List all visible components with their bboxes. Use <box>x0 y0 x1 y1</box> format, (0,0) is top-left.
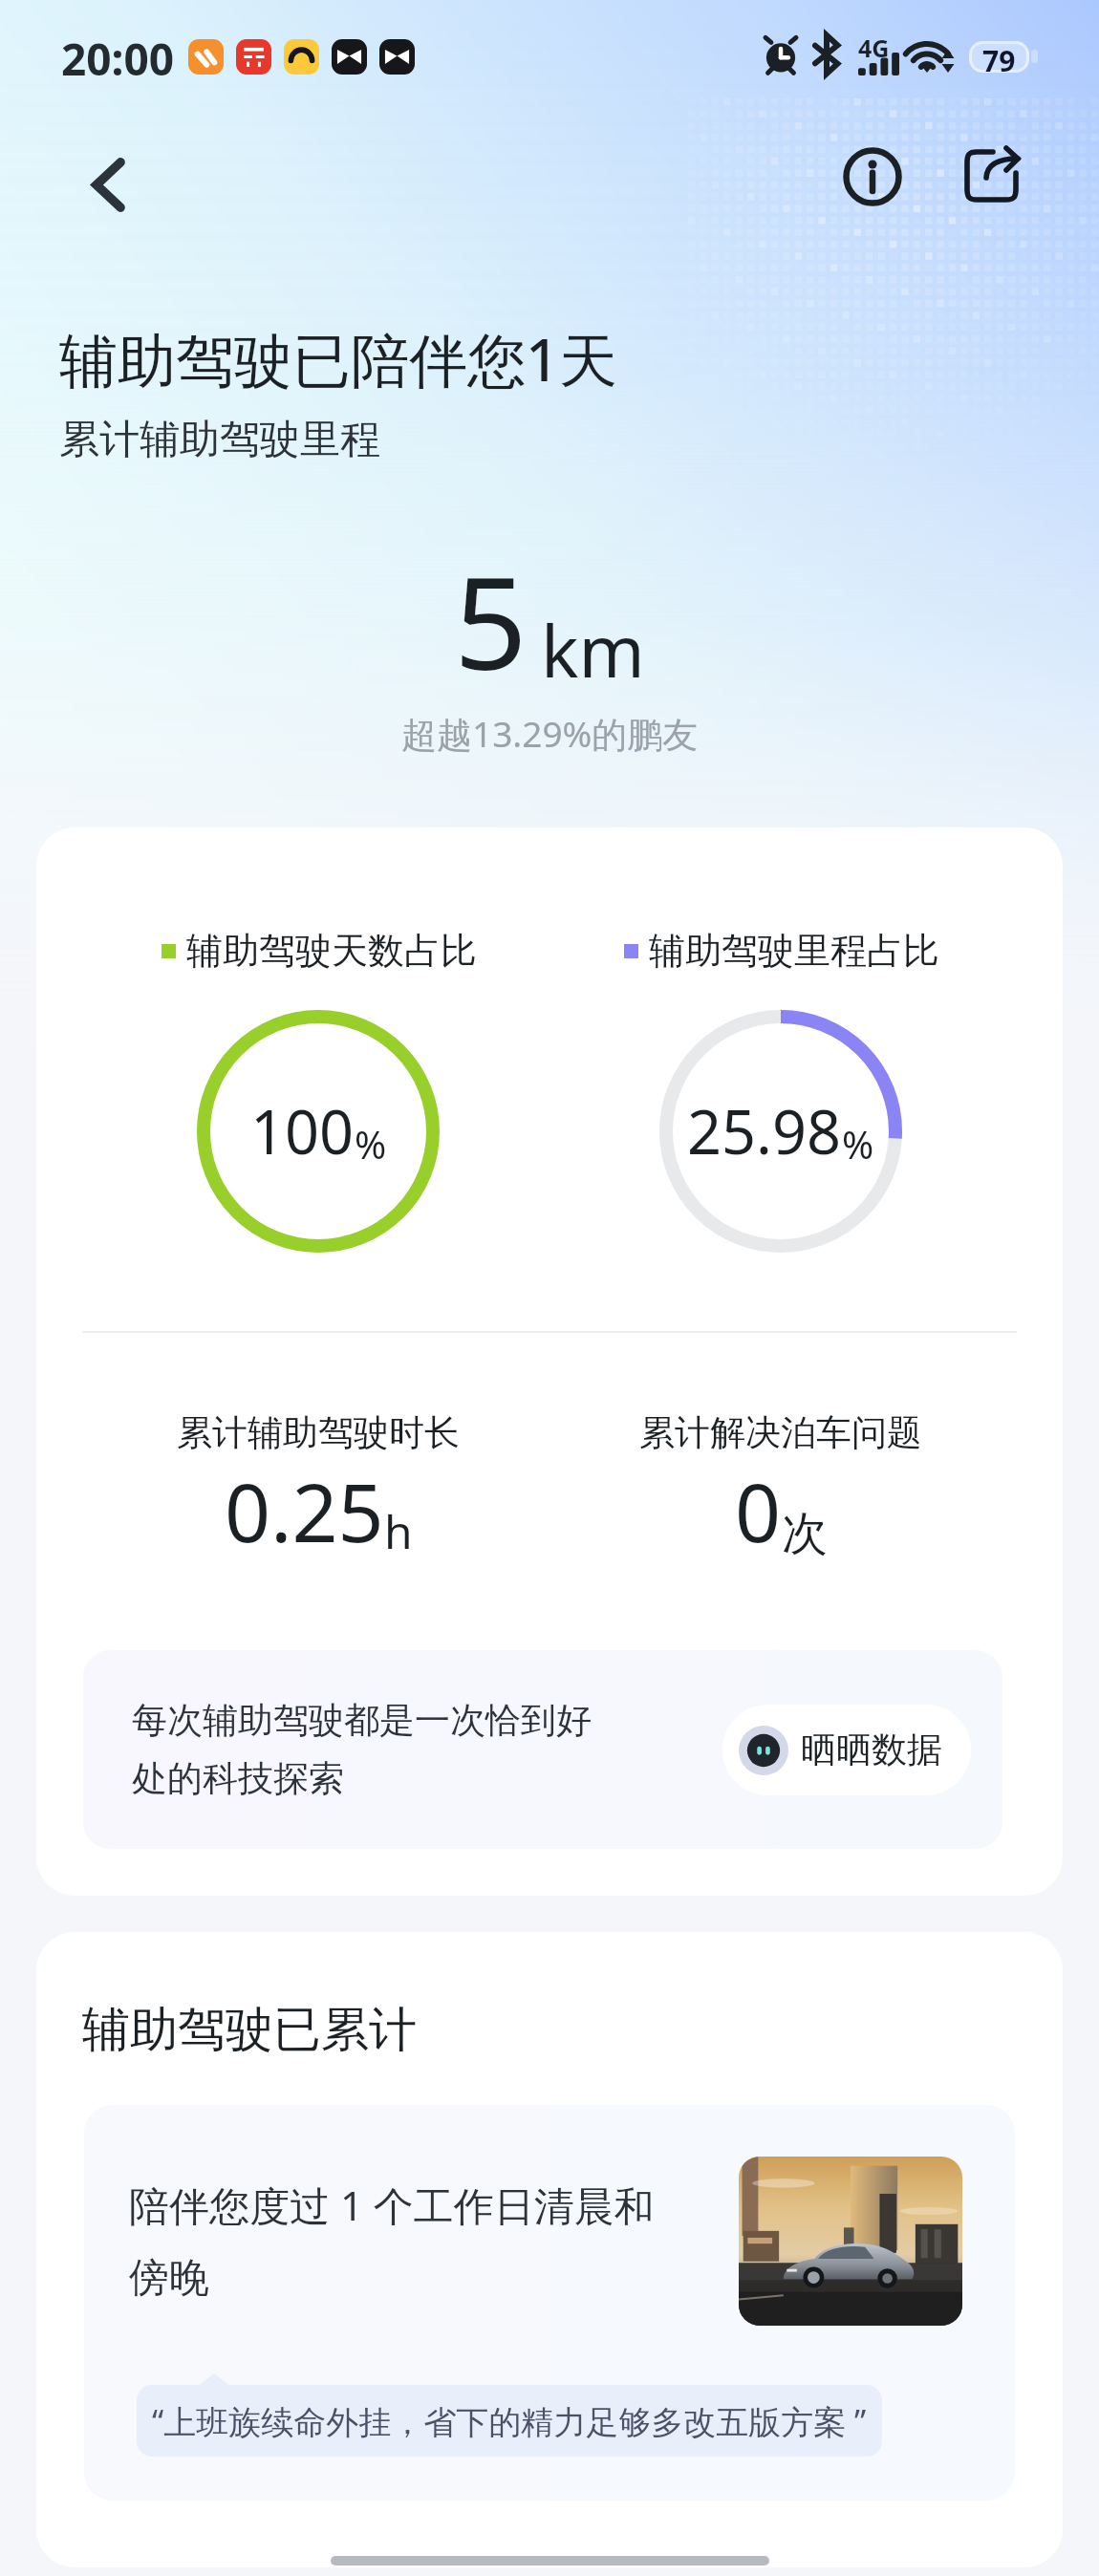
staticText: 0 <box>735 1456 782 1565</box>
staticText: 超越13.29%的鹏友 <box>401 709 699 758</box>
staticText: 累计辅助驾驶里程 <box>59 415 380 465</box>
staticText: 次 <box>782 1505 828 1562</box>
staticText: 5 <box>454 533 528 708</box>
staticText: % <box>355 1118 387 1170</box>
button[interactable]: 晒晒数据 <box>722 1705 971 1795</box>
button[interactable]: Share <box>949 136 1033 220</box>
staticText: 辅助驾驶已陪伴您1天 <box>59 319 617 398</box>
staticText: 晒晒数据 <box>801 1728 942 1772</box>
staticText: 79 <box>982 41 1016 73</box>
staticText: 陪伴您度过 1 个工作日清晨和傍晚 <box>129 2178 674 2304</box>
button[interactable]: Back <box>68 144 148 225</box>
staticText: 25.98 <box>687 1090 842 1172</box>
staticText: 累计辅助驾驶时长 <box>177 1410 460 1455</box>
staticText: “上班族续命外挂，省下的精力足够多改五版方案 ” <box>152 2399 867 2443</box>
staticText: 0.25 <box>225 1456 384 1565</box>
staticText: 100 <box>250 1090 355 1172</box>
staticText: 辅助驾驶天数占比 <box>186 928 477 974</box>
staticText: 20:00 <box>61 29 175 89</box>
staticText: 辅助驾驶里程占比 <box>649 928 939 974</box>
button[interactable]: Info <box>831 136 914 218</box>
staticText: 4G <box>858 32 890 64</box>
staticText: % <box>842 1118 874 1170</box>
staticText: 辅助驾驶已累计 <box>82 2000 417 2060</box>
staticText: 累计解决泊车问题 <box>639 1410 922 1455</box>
staticText: km <box>541 602 645 698</box>
staticText: 每次辅助驾驶都是一次恰到好处的科技探索 <box>132 1698 596 1801</box>
staticText: h <box>384 1500 413 1562</box>
